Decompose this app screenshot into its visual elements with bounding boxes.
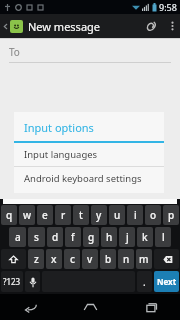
staticText: New message xyxy=(28,19,101,34)
button[interactable]: g xyxy=(83,227,99,247)
staticText: g xyxy=(88,230,95,244)
button[interactable]: m xyxy=(136,249,152,269)
button[interactable]: Home xyxy=(60,294,120,320)
staticText: t xyxy=(79,208,83,222)
staticText: v xyxy=(87,252,93,266)
staticText: 9:58 xyxy=(159,1,177,13)
button[interactable]: Recent apps xyxy=(120,294,180,320)
staticText: j xyxy=(126,230,129,244)
button[interactable]: d xyxy=(47,227,63,247)
button[interactable]: t xyxy=(73,205,89,225)
button[interactable]: b xyxy=(100,249,116,269)
staticText: w xyxy=(23,208,32,222)
staticText: To xyxy=(9,45,20,59)
staticText: l xyxy=(162,230,165,244)
staticText: q xyxy=(6,208,13,222)
staticText: a xyxy=(15,230,21,244)
staticText: Input options xyxy=(24,120,94,135)
button[interactable]: a xyxy=(9,227,26,247)
staticText: f xyxy=(71,230,75,244)
button[interactable]: l xyxy=(155,227,171,247)
staticText: d xyxy=(52,230,59,244)
button[interactable]: o xyxy=(145,205,161,225)
staticText: k xyxy=(142,230,148,244)
button[interactable]: c xyxy=(64,249,80,269)
staticText: m xyxy=(139,252,149,266)
button[interactable]: y xyxy=(91,205,107,225)
button[interactable]: h xyxy=(101,227,117,247)
staticText: Next xyxy=(157,276,177,287)
button[interactable]: Voice input xyxy=(25,271,40,292)
button[interactable]: . xyxy=(137,271,152,292)
staticText: . xyxy=(143,275,146,289)
staticText: i xyxy=(134,208,137,222)
button[interactable]: f xyxy=(65,227,81,247)
button[interactable]: n xyxy=(118,249,134,269)
button[interactable]: r xyxy=(55,205,71,225)
button[interactable]: p xyxy=(163,205,179,225)
staticText: r xyxy=(61,208,66,222)
button[interactable]: More options xyxy=(164,14,180,38)
staticText: n xyxy=(123,252,130,266)
button[interactable]: i xyxy=(127,205,143,225)
button[interactable]: Android keyboard settings xyxy=(14,167,164,190)
staticText: ?123 xyxy=(3,276,21,287)
button[interactable]: w xyxy=(19,205,35,225)
button[interactable]: Input languages xyxy=(14,143,164,166)
staticText: y xyxy=(96,208,102,222)
button[interactable]: q xyxy=(1,205,17,225)
button[interactable]: Back xyxy=(0,294,60,320)
button[interactable]: Shift xyxy=(1,249,26,269)
button[interactable]: j xyxy=(119,227,135,247)
staticText: c xyxy=(70,252,75,266)
staticText: h xyxy=(106,230,113,244)
button[interactable]: x xyxy=(46,249,62,269)
button[interactable]: Navigate up xyxy=(0,14,101,38)
button[interactable]: Attach xyxy=(138,14,164,38)
button[interactable]: Backspace xyxy=(154,249,179,269)
button[interactable]: Next xyxy=(154,271,179,292)
staticText: o xyxy=(150,208,157,222)
button[interactable]: v xyxy=(82,249,98,269)
button[interactable]: k xyxy=(137,227,153,247)
button[interactable]: e xyxy=(37,205,53,225)
staticText: Input languages xyxy=(24,148,98,161)
staticText: u xyxy=(114,208,121,222)
staticText: Android keyboard settings xyxy=(24,172,142,185)
button[interactable]: u xyxy=(109,205,125,225)
button[interactable]: z xyxy=(28,249,44,269)
staticText: b xyxy=(105,252,112,266)
staticText: e xyxy=(42,208,48,222)
button[interactable]: To xyxy=(9,45,171,63)
button[interactable]: ?123 xyxy=(1,271,23,292)
button[interactable]: s xyxy=(28,227,45,247)
staticText: p xyxy=(168,208,175,222)
staticText: z xyxy=(34,252,39,266)
staticText: x xyxy=(51,252,57,266)
other: Navigate up xyxy=(2,23,9,30)
staticText: s xyxy=(34,230,39,244)
